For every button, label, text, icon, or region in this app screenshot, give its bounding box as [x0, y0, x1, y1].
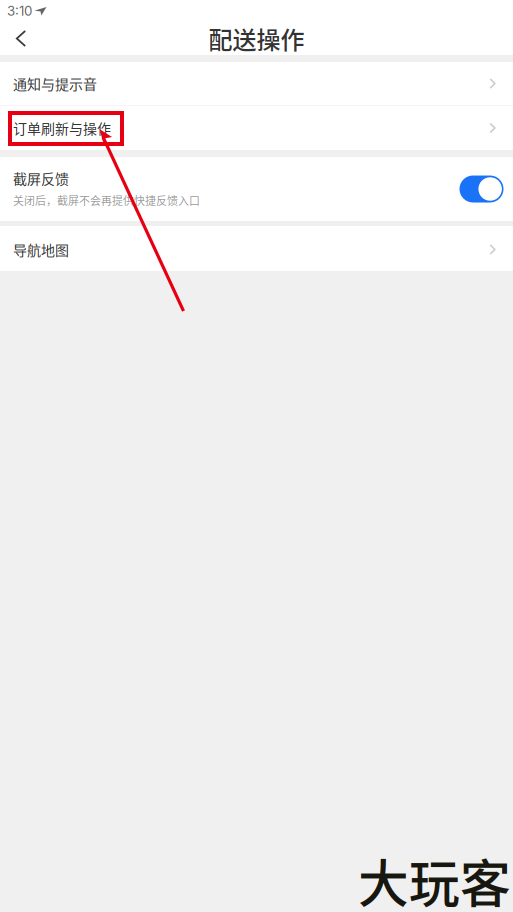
staticText: 截屏反馈	[13, 168, 69, 188]
staticText: 通知与提示音	[13, 73, 97, 94]
staticText: 3:10	[7, 3, 32, 19]
staticText: 关闭后，截屏不会再提供快捷反馈入口	[13, 192, 200, 208]
button[interactable]: 通知与提示音	[0, 62, 513, 105]
button[interactable]: 截屏反馈	[0, 157, 513, 221]
staticText: 导航地图	[13, 239, 69, 260]
staticText: 配送操作	[208, 21, 304, 56]
staticText: 订单刷新与操作	[13, 118, 111, 138]
button[interactable]: 订单刷新与操作	[0, 106, 513, 150]
button[interactable]: 导航地图	[0, 226, 513, 271]
button[interactable]: 返回	[0, 22, 38, 55]
staticText: 大玩客	[358, 844, 511, 912]
